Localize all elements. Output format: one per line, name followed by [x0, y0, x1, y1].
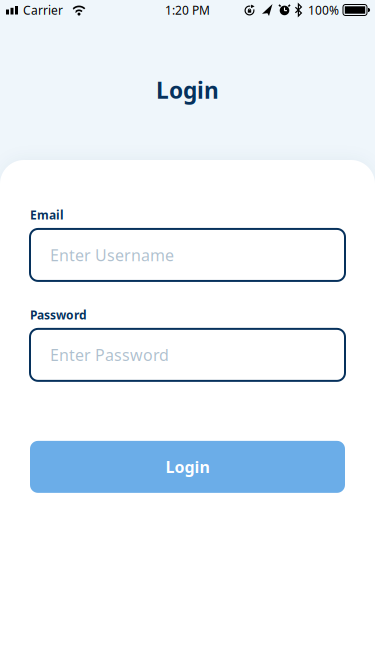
staticText: Login — [156, 75, 219, 105]
staticText: Email — [30, 207, 64, 223]
staticText: 100% — [308, 2, 339, 18]
staticText: Password — [30, 307, 87, 323]
staticText: Enter Username — [50, 244, 174, 265]
staticText: Carrier — [23, 2, 63, 18]
textField[interactable]: Enter Username — [30, 229, 345, 281]
staticText: 1:20 PM — [165, 2, 210, 18]
staticText: Login — [165, 456, 209, 477]
textField[interactable]: Enter Password — [30, 329, 345, 381]
staticText: Enter Password — [50, 344, 169, 365]
button[interactable]: Login — [30, 441, 345, 493]
